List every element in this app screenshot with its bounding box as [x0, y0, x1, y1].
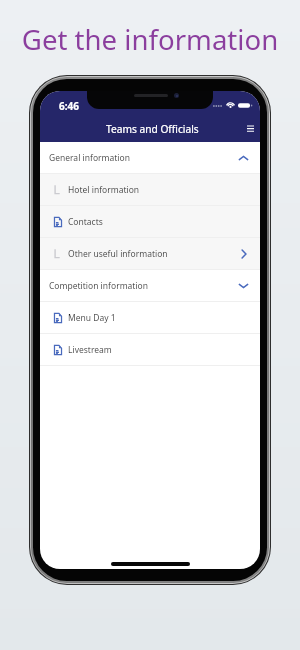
staticText: Teams and Officials: [106, 122, 199, 136]
staticText: Contacts: [68, 216, 103, 228]
staticText: Menu Day 1: [68, 312, 116, 324]
staticText: Livestream: [68, 344, 112, 356]
staticText: Other useful information: [68, 248, 168, 260]
button[interactable]: Menu Day 1: [40, 302, 260, 333]
button[interactable]: Competition information: [40, 270, 260, 301]
button[interactable]: Livestream: [40, 334, 260, 365]
button[interactable]: Other useful information: [40, 238, 260, 269]
staticText: General information: [49, 152, 130, 164]
button[interactable]: Menu: [243, 121, 257, 135]
staticText: Hotel information: [68, 184, 140, 196]
button[interactable]: Hotel information: [40, 174, 260, 205]
button[interactable]: Contacts: [40, 206, 260, 237]
staticText: Get the information: [0, 20, 300, 58]
button[interactable]: General information: [40, 142, 260, 173]
staticText: Competition information: [49, 280, 149, 292]
staticText: 6:46: [59, 99, 79, 113]
